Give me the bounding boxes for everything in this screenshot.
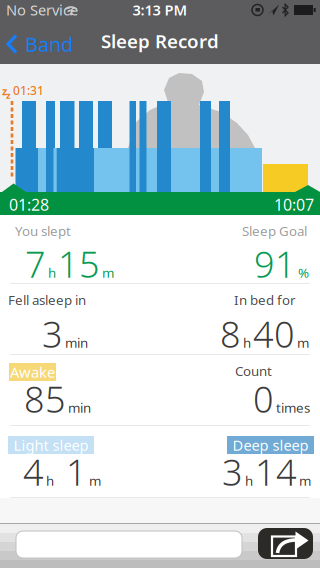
staticText: 4 — [23, 448, 44, 496]
staticText: 40 — [253, 310, 295, 358]
staticText: 01:28 — [9, 194, 49, 215]
staticText: h — [48, 264, 56, 281]
staticText: Sleep Goal — [242, 222, 307, 240]
button[interactable] — [16, 531, 242, 558]
staticText: 85 — [24, 375, 66, 423]
staticText: Deep sleep — [232, 435, 308, 455]
staticText: m — [297, 334, 309, 351]
staticText: 10:07 — [274, 194, 314, 215]
staticText: Sleep Record — [101, 28, 219, 53]
staticText: Band — [25, 31, 73, 57]
button[interactable] — [258, 528, 313, 559]
staticText: 14 — [255, 448, 297, 496]
staticText: Fell asleep in — [8, 291, 86, 309]
staticText: times — [276, 399, 310, 416]
staticText: h — [245, 472, 253, 489]
staticText: 15 — [58, 240, 100, 288]
staticText: 3 — [222, 448, 243, 496]
staticText: min — [65, 334, 88, 351]
staticText: Light sleep — [13, 435, 88, 455]
staticText: 7 — [25, 240, 46, 288]
staticText: 01:31 — [13, 82, 44, 98]
staticText: z — [2, 84, 7, 98]
staticText: m — [89, 472, 101, 489]
staticText: min — [68, 399, 91, 416]
staticText: Awake — [10, 362, 55, 382]
staticText: z — [6, 89, 11, 101]
staticText: Count — [235, 362, 272, 380]
button[interactable]: Band — [4, 24, 73, 64]
staticText: In bed for — [234, 291, 296, 309]
staticText: 91 — [254, 240, 296, 288]
staticText: m — [299, 472, 311, 489]
staticText: 0 — [253, 375, 274, 423]
staticText: 8 — [220, 310, 241, 358]
staticText: h — [46, 472, 54, 489]
staticText: 1 — [66, 448, 87, 496]
staticText: 3:13 PM — [132, 0, 187, 19]
staticText: You slept — [15, 222, 71, 240]
staticText: m — [102, 264, 114, 281]
staticText: h — [243, 334, 251, 351]
staticText: % — [298, 264, 309, 281]
staticText: No Service — [6, 0, 78, 19]
staticText: 3 — [42, 310, 63, 358]
